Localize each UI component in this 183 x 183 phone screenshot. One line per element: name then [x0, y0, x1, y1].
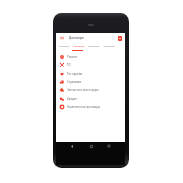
staticText: Договоры: [69, 36, 84, 40]
staticText: Тест-драйв: [67, 72, 83, 76]
staticText: ТО: [67, 63, 71, 67]
button[interactable]: АРХИВНЫЕ: [101, 42, 116, 50]
staticText: ЗАКРЫТЫЕ: [88, 45, 99, 48]
staticText: Комплексные договоры: [67, 105, 101, 109]
button[interactable]: Страховка: [56, 78, 125, 86]
staticText: Кредит: [67, 97, 77, 101]
button[interactable]: Recent apps: [106, 143, 112, 149]
button[interactable]: Тест-драйв: [56, 70, 125, 78]
button[interactable]: Кредит: [56, 95, 125, 103]
button[interactable]: Ремонт: [56, 53, 125, 61]
button[interactable]: Запчасти и аксессуары: [56, 86, 125, 94]
button[interactable]: АКТИВНЫЕ: [71, 42, 86, 50]
button[interactable]: New contract: [116, 34, 124, 42]
button[interactable]: ТО: [56, 61, 125, 69]
button[interactable]: Back: [69, 143, 75, 149]
button[interactable]: ЗАКРЫТЫЕ: [86, 42, 101, 50]
staticText: АКТИВНЫЕ: [73, 45, 85, 48]
staticText: АРХИВНЫЕ: [103, 45, 115, 48]
staticText: ТЕКУЩИЕ: [59, 45, 69, 48]
staticText: Ремонт: [67, 55, 78, 59]
button[interactable]: ТЕКУЩИЕ: [56, 42, 71, 50]
button[interactable]: Home: [88, 143, 94, 149]
staticText: Страховка: [67, 80, 82, 84]
button[interactable]: Комплексные договоры: [56, 103, 125, 111]
staticText: Запчасти и аксессуары: [67, 88, 99, 92]
button[interactable]: Open navigation menu: [58, 34, 66, 42]
